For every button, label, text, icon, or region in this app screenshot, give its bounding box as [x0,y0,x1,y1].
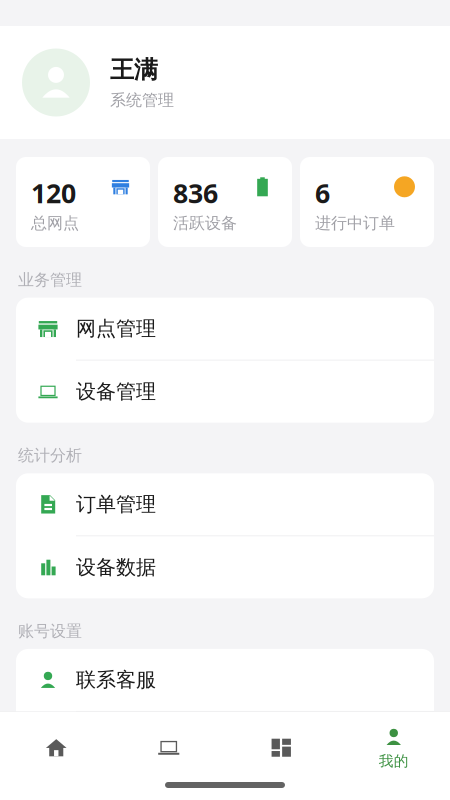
staticText: 设备管理 [76,379,156,404]
staticText: 统计分析 [18,446,82,465]
staticText: 王满 [110,55,158,84]
button[interactable]: 联系客服 [16,649,434,712]
button[interactable]: 工作台 [225,735,337,759]
staticText: 订单管理 [76,492,156,517]
staticText: 活跃设备 [173,213,237,233]
staticText: 系统管理 [110,90,174,110]
staticText: 836 [173,175,218,211]
button[interactable]: 设备数据 [16,536,434,598]
staticText: 业务管理 [18,270,82,290]
staticText: 总网点 [31,213,79,233]
staticText: 我的 [379,752,409,770]
staticText: 设备数据 [76,555,156,580]
button[interactable]: 设置 [16,712,434,774]
button[interactable]: 王满 [0,26,450,139]
staticText: 120 [31,175,76,211]
button[interactable]: 首页 [0,735,112,759]
button[interactable]: 设备管理 [16,361,434,423]
button[interactable]: 我的 [337,725,450,770]
staticText: 联系客服 [76,668,156,692]
staticText: 进行中订单 [315,213,395,233]
button[interactable]: 订单管理 [16,473,434,536]
staticText: 账号设置 [18,621,82,641]
staticText: 网点管理 [76,316,156,341]
button[interactable]: 网点管理 [16,298,434,361]
staticText: 6 [315,175,330,211]
button[interactable]: 设备 [112,735,225,759]
